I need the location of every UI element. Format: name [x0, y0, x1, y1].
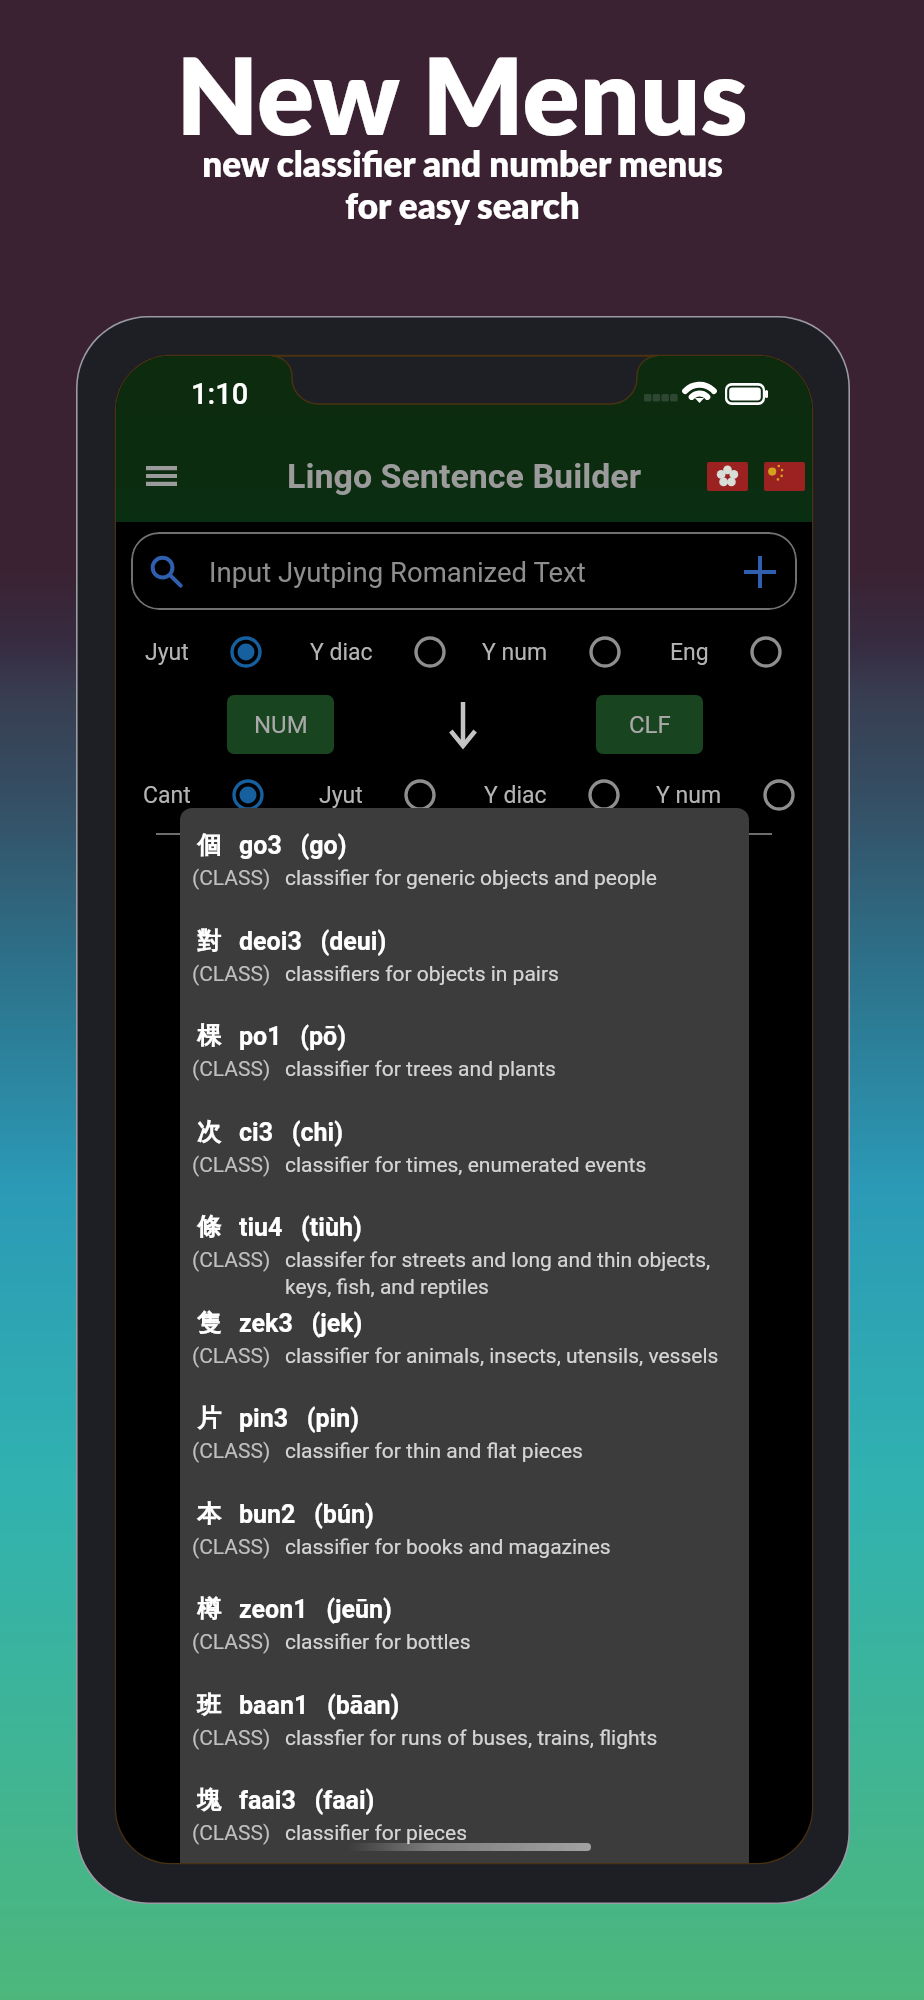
staticText: faai3 (faai): [239, 1786, 375, 1815]
staticText: 本: [197, 1499, 221, 1529]
staticText: new classifier and number menus for easy…: [202, 142, 723, 226]
button[interactable]: Open navigation menu: [128, 442, 194, 510]
staticText: New Menus: [176, 30, 748, 157]
button[interactable]: 樽: [180, 1586, 749, 1682]
staticText: 片: [197, 1403, 221, 1433]
staticText: 隻: [197, 1308, 221, 1338]
staticText: 1:10: [191, 377, 249, 411]
staticText: pin3 (pin): [239, 1404, 360, 1433]
staticText: (CLASS): [192, 1726, 271, 1751]
button[interactable]: CLF: [596, 695, 703, 754]
button[interactable]: 本: [180, 1491, 749, 1587]
staticText: classifier for times, enumerated events: [285, 1153, 647, 1178]
staticText: Input Jyutping Romanized Text: [209, 556, 586, 588]
staticText: Jyut: [145, 639, 189, 666]
staticText: (CLASS): [192, 1057, 271, 1082]
button[interactable]: Y num: [638, 769, 812, 821]
button[interactable]: Input Jyutping Romanized Text: [131, 532, 797, 610]
button[interactable]: 個: [180, 822, 749, 918]
button[interactable]: NUM: [227, 695, 334, 754]
staticText: classfier for runs of buses, trains, fli…: [285, 1726, 658, 1751]
staticText: CLF: [629, 711, 671, 739]
staticText: 個: [197, 830, 221, 860]
staticText: classifier for trees and plants: [285, 1057, 556, 1082]
staticText: 塊: [197, 1785, 221, 1815]
staticText: zek3 (jek): [239, 1309, 363, 1338]
staticText: Cant: [143, 782, 191, 809]
button[interactable]: 片: [180, 1395, 749, 1491]
button[interactable]: 班: [180, 1682, 749, 1778]
staticText: Lingo Sentence Builder: [287, 456, 642, 496]
staticText: Eng: [670, 639, 709, 666]
staticText: (CLASS): [192, 962, 271, 987]
staticText: po1 (pō): [239, 1022, 347, 1051]
button[interactable]: Cantonese: [707, 462, 748, 491]
staticText: (CLASS): [192, 1248, 271, 1273]
staticText: (CLASS): [192, 1821, 271, 1846]
button[interactable]: 棵: [180, 1013, 749, 1109]
staticText: 棵: [197, 1021, 221, 1051]
staticText: zeon1 (jeūn): [239, 1595, 392, 1624]
staticText: Y diac: [310, 639, 373, 666]
staticText: Y num: [482, 639, 548, 666]
staticText: classifier for thin and flat pieces: [285, 1439, 583, 1464]
button[interactable]: Mandarin: [764, 462, 805, 491]
staticText: (CLASS): [192, 1344, 271, 1369]
staticText: (CLASS): [192, 1630, 271, 1655]
staticText: (CLASS): [192, 1153, 271, 1178]
staticText: Y diac: [484, 782, 547, 809]
button[interactable]: 次: [180, 1109, 749, 1205]
staticText: 對: [197, 926, 221, 956]
staticText: 班: [197, 1690, 221, 1720]
staticText: baan1 (bāan): [239, 1691, 400, 1720]
staticText: classifiers for objects in pairs: [285, 962, 559, 987]
staticText: bun2 (bún): [239, 1500, 374, 1529]
button[interactable]: 對: [180, 918, 749, 1014]
button[interactable]: Add word: [740, 552, 780, 592]
button[interactable]: 條: [180, 1204, 749, 1300]
button[interactable]: 隻: [180, 1300, 749, 1396]
button[interactable]: Y num: [464, 626, 638, 678]
staticText: 條: [197, 1212, 221, 1242]
staticText: tiu4 (tiùh): [239, 1213, 362, 1242]
button[interactable]: Jyut: [116, 626, 290, 678]
staticText: classifier for books and magazines: [285, 1535, 611, 1560]
staticText: 次: [197, 1117, 221, 1147]
staticText: ci3 (chi): [239, 1118, 343, 1147]
staticText: 樽: [197, 1594, 221, 1624]
staticText: Y num: [656, 782, 722, 809]
staticText: Jyut: [319, 782, 363, 809]
button[interactable]: Y diac: [464, 769, 638, 821]
staticText: classifier for bottles: [285, 1630, 471, 1655]
button[interactable]: Jyut: [290, 769, 464, 821]
staticText: (CLASS): [192, 1439, 271, 1464]
staticText: classifier for animals, insects, utensil…: [285, 1344, 719, 1369]
staticText: deoi3 (deui): [239, 927, 387, 956]
staticText: classifier for pieces: [285, 1821, 468, 1846]
button[interactable]: 塊: [180, 1777, 749, 1863]
button[interactable]: Eng: [638, 626, 812, 678]
staticText: (CLASS): [192, 866, 271, 891]
staticText: classifier for generic objects and peopl…: [285, 866, 657, 891]
button[interactable]: Cant: [116, 769, 290, 821]
staticText: go3 (go): [239, 831, 347, 860]
staticText: classifer for streets and long and thin …: [285, 1248, 711, 1300]
button[interactable]: Y diac: [290, 626, 464, 678]
staticText: NUM: [254, 711, 308, 739]
staticText: (CLASS): [192, 1535, 271, 1560]
